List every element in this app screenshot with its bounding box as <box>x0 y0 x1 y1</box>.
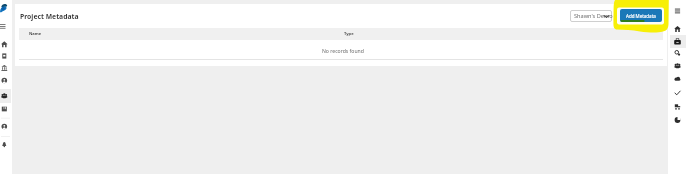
button[interactable]: Account <box>0 121 11 132</box>
button[interactable]: Menu <box>0 21 11 31</box>
button[interactable]: Dashboard <box>0 39 11 50</box>
button[interactable]: Home logo <box>0 1 11 12</box>
button[interactable]: People <box>670 61 686 72</box>
button[interactable]: Projects <box>0 89 11 103</box>
button[interactable]: Profile <box>0 75 11 86</box>
button[interactable]: Tasks <box>670 88 686 99</box>
staticText: Project Metadata <box>20 12 79 21</box>
button[interactable]: Shipments <box>670 102 686 113</box>
staticText: Type <box>344 31 354 37</box>
button[interactable]: Company <box>0 104 11 115</box>
staticText: Add Metadata <box>626 13 656 19</box>
button[interactable] <box>570 10 612 22</box>
staticText: Shawn's Demo <box>574 12 613 20</box>
button[interactable]: Documents <box>0 51 11 62</box>
button[interactable]: All apps <box>670 5 686 16</box>
button[interactable]: Reports <box>670 115 686 126</box>
button[interactable]: Projects <box>670 35 686 48</box>
button[interactable]: Add Metadata <box>620 9 662 22</box>
button[interactable]: Accounts <box>0 63 11 74</box>
button[interactable]: Cloud <box>670 74 686 85</box>
staticText: Name <box>29 31 42 37</box>
button[interactable]: Notifications <box>0 139 11 150</box>
button[interactable]: Home <box>670 24 686 35</box>
staticText: No records found <box>322 48 364 55</box>
button[interactable]: Settings <box>670 48 686 59</box>
